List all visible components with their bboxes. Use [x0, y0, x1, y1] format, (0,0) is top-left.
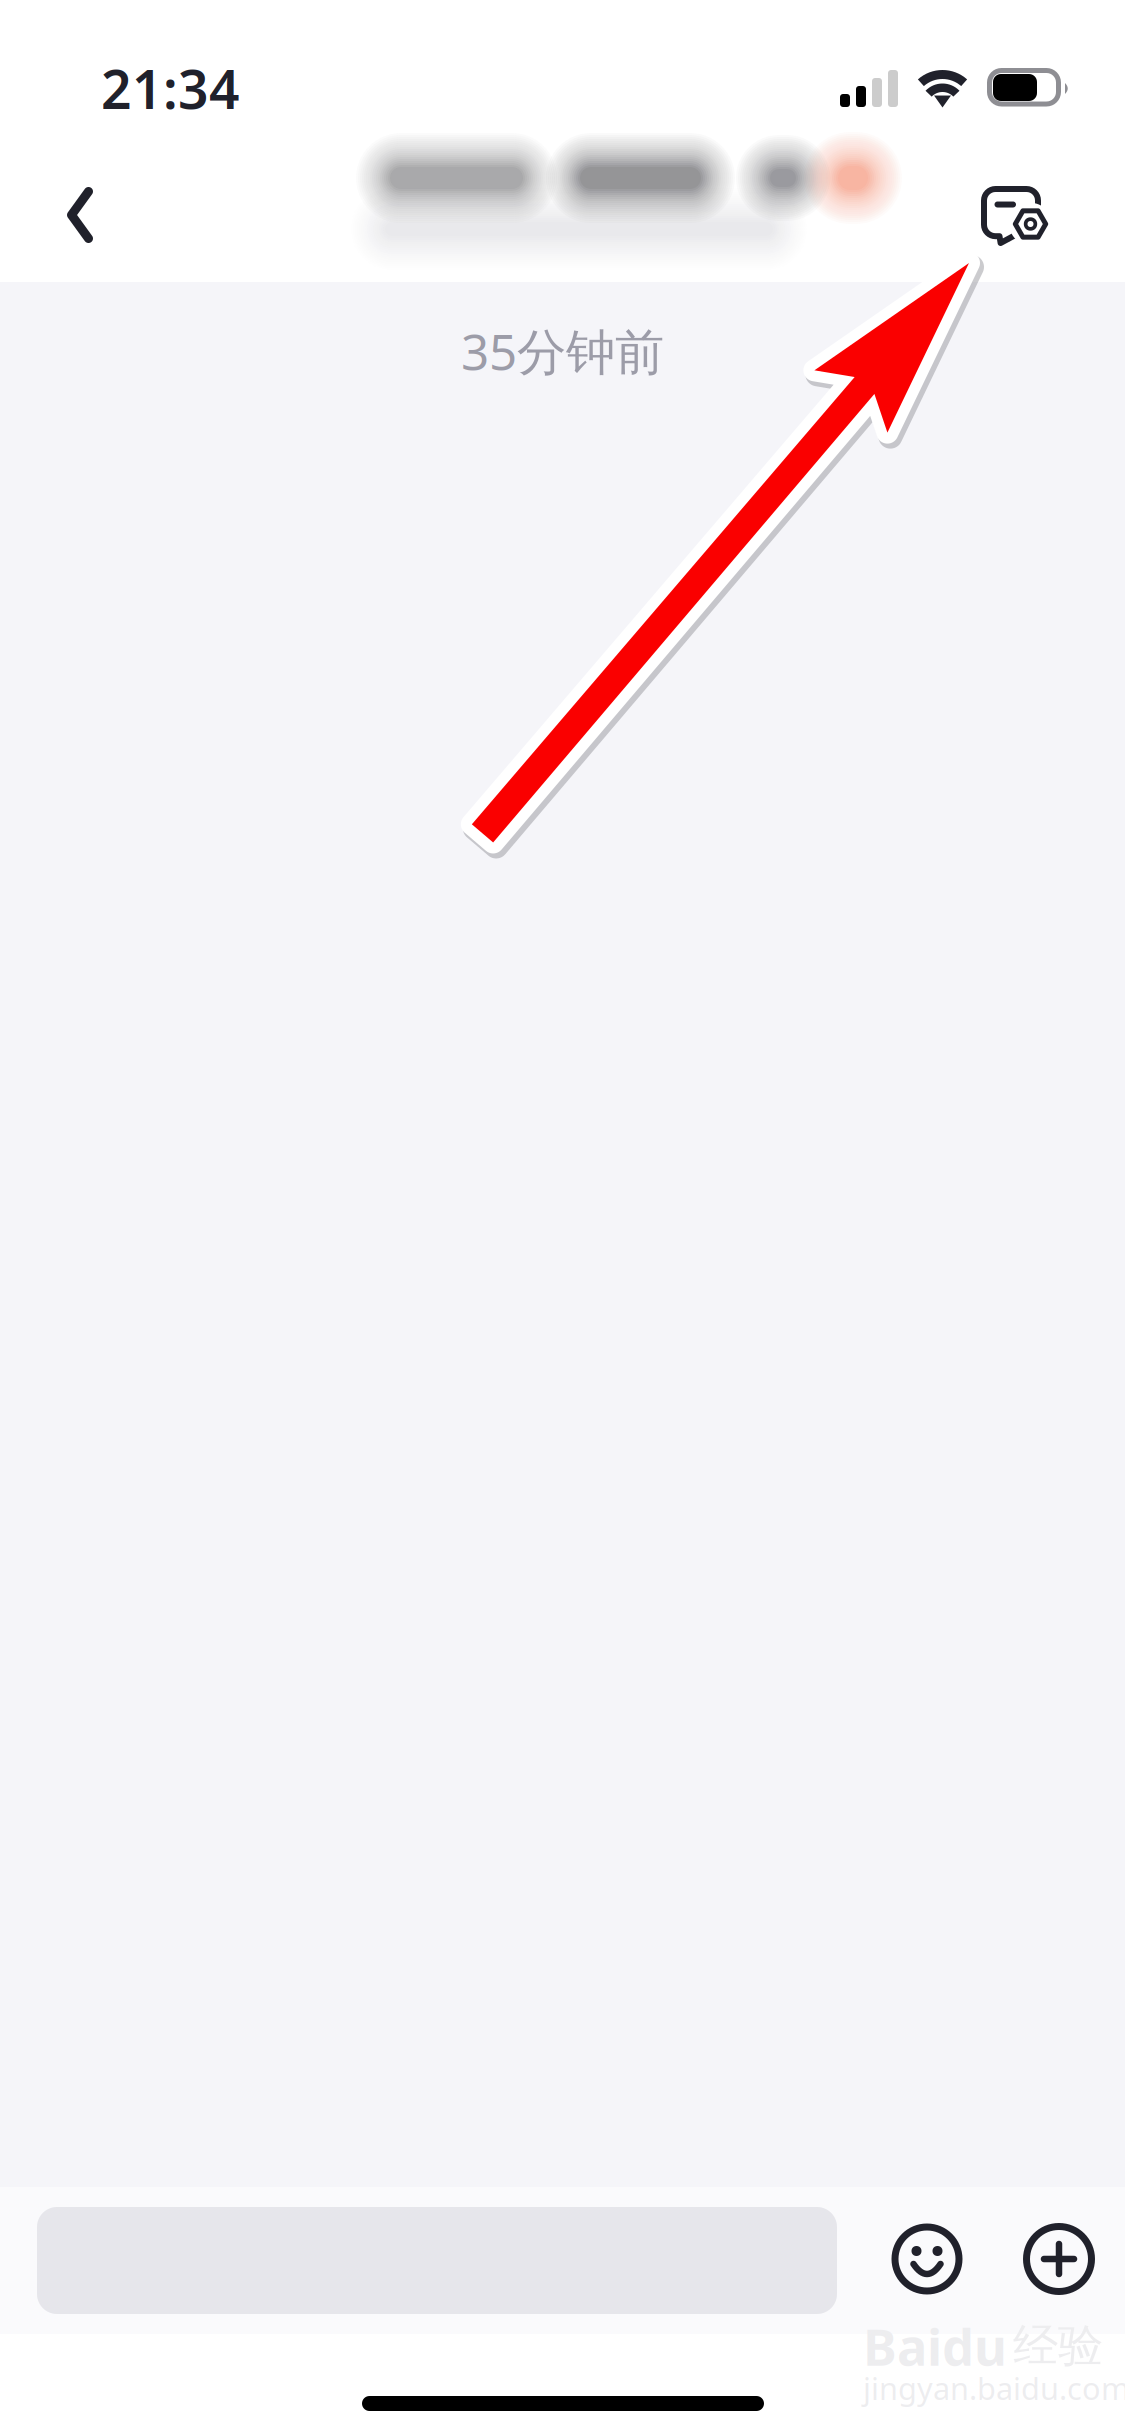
button[interactable]: Back [0, 0, 110, 110]
staticText: Baidu [863, 2312, 1007, 2380]
staticText: 21:34 [101, 53, 240, 124]
staticText: 经验 [1013, 2318, 1103, 2374]
staticText: jingyan.baidu.com [863, 2368, 1125, 2408]
button[interactable]: Chat settings [0, 0, 130, 116]
staticText: 35分钟前 [461, 318, 664, 383]
